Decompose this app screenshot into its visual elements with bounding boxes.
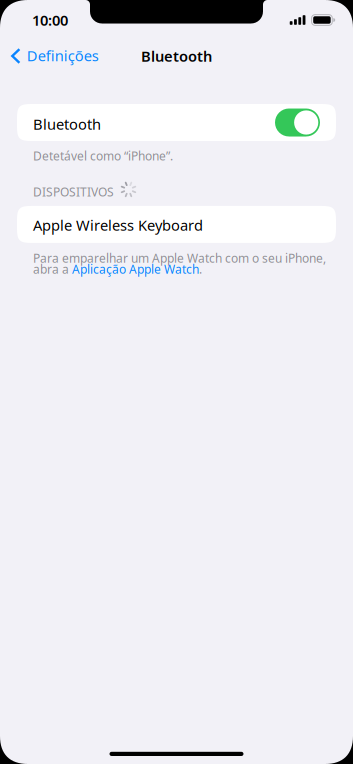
staticText: 10:00 <box>32 10 68 30</box>
staticText: Bluetooth <box>141 46 212 66</box>
staticText: Bluetooth <box>33 114 101 134</box>
staticText: DISPOSITIVOS <box>33 184 114 200</box>
button[interactable]: Aplicação Apple Watch <box>72 261 199 277</box>
staticText: abra a <box>33 261 72 277</box>
button[interactable]: Definições <box>0 40 107 72</box>
staticText: Aplicação Apple Watch <box>72 261 199 277</box>
staticText: Definições <box>27 46 99 65</box>
button[interactable]: Bluetooth <box>17 104 336 141</box>
staticText: Para emparelhar um Apple Watch com o seu… <box>33 250 326 266</box>
button[interactable]: Apple Wireless Keyboard <box>17 206 336 243</box>
staticText: Detetável como “iPhone”. <box>33 148 173 164</box>
staticText: . <box>199 261 202 277</box>
staticText: Apple Wireless Keyboard <box>33 215 203 235</box>
